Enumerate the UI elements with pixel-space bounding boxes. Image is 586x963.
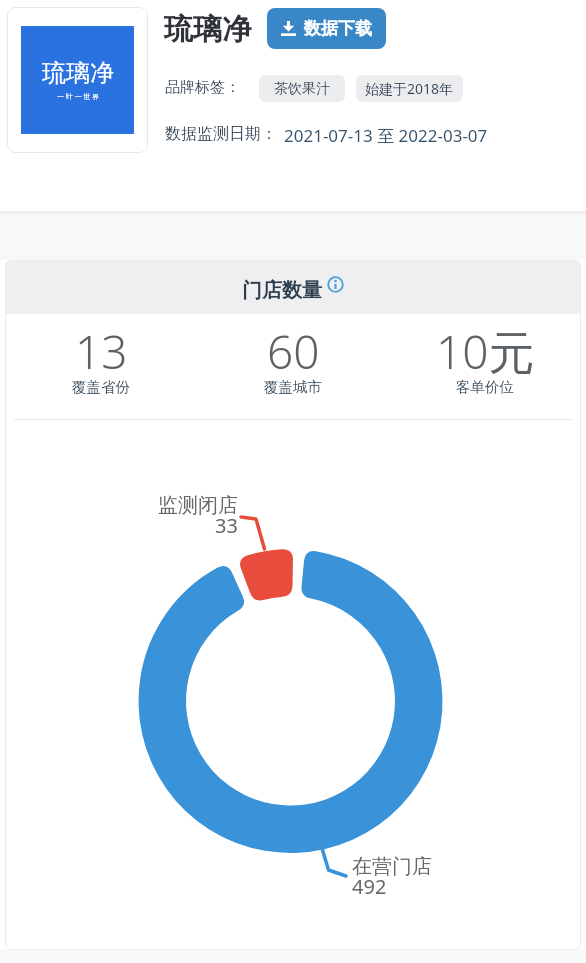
staticText: 监测闭店 33 (158, 493, 238, 539)
staticText: 琉璃净 (42, 58, 114, 88)
staticText: 茶饮果汁 (274, 80, 330, 98)
button[interactable] (327, 276, 344, 293)
staticText: 在营门店 492 (352, 854, 432, 900)
staticText: 一 叶 一 世 界 (57, 92, 100, 102)
staticText: 10元 (436, 320, 535, 383)
staticText: 琉璃净 (164, 11, 251, 48)
button[interactable]: 始建于2018年 (356, 75, 463, 102)
button[interactable]: 数据下载 (267, 8, 386, 49)
staticText: 60 (267, 320, 320, 383)
staticText: 品牌标签： (165, 78, 240, 97)
staticText: 数据下载 (304, 18, 372, 39)
staticText: 数据监测日期： (165, 124, 277, 144)
button[interactable]: 茶饮果汁 (259, 75, 345, 102)
staticText: 门店数量 (242, 278, 322, 303)
staticText: 覆盖城市 (264, 378, 322, 396)
staticText: 2021-07-13 至 2022-03-07 (284, 124, 488, 147)
staticText: 覆盖省份 (72, 378, 130, 396)
staticText: 13 (75, 320, 128, 383)
staticText: 始建于2018年 (365, 79, 454, 98)
staticText: 客单价位 (456, 378, 514, 396)
